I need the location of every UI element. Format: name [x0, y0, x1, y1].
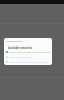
staticText: WiFi is unsupported by the hardware: [9, 50, 51, 53]
staticText: Ask to join networks and see what happen…: [9, 60, 52, 63]
staticText: Turn on WiFi to see: [9, 55, 31, 58]
button[interactable]: Turn on WiFi to see: [4, 54, 52, 59]
button[interactable]: WiFi is unsupported by the hardware: [4, 49, 52, 54]
staticText: Wifi Preference: [6, 40, 23, 43]
staticText: Available networks: [8, 46, 32, 49]
button[interactable]: Ask to join networks and see what happen…: [4, 59, 52, 64]
